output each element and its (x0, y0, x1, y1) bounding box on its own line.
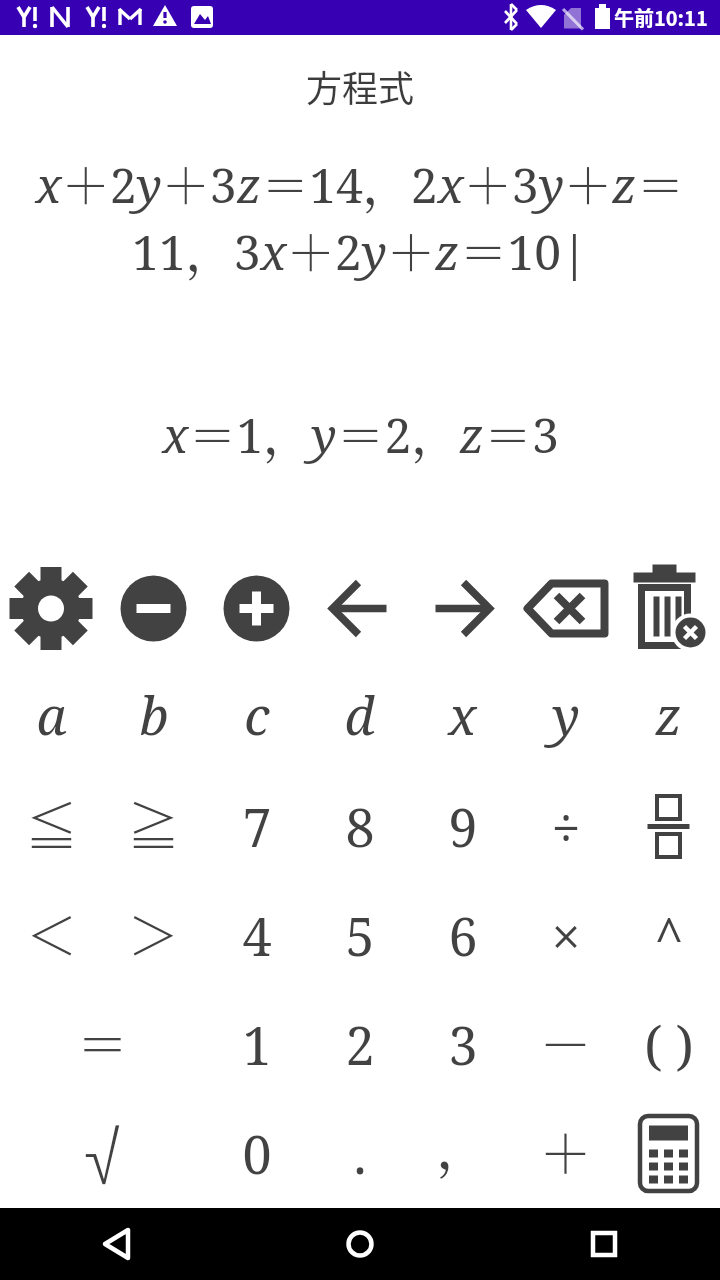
staticText: z (655, 679, 682, 750)
button[interactable] (617, 1099, 720, 1208)
button[interactable] (0, 554, 102, 663)
staticText: a (36, 679, 67, 750)
staticText: × (551, 900, 581, 971)
button[interactable]: 9 (411, 772, 514, 881)
staticText: 8 (345, 791, 375, 862)
button[interactable]: 2 (308, 990, 411, 1099)
staticText: ＜ (25, 895, 78, 970)
staticText: ^ (654, 900, 684, 971)
staticText: x＋2y＋3z＝14，2x＋3y＋z＝ 11，3x＋2y＋z＝10| (0, 148, 720, 284)
staticText: － (539, 1004, 592, 1079)
staticText: x＝1，y＝2，z＝3 (162, 398, 559, 467)
staticText: 0 (242, 1118, 272, 1189)
button[interactable]: 4 (205, 881, 308, 990)
button[interactable] (411, 554, 514, 663)
staticText: 7 (242, 791, 272, 862)
button[interactable]: 6 (411, 881, 514, 990)
staticText: 4 (242, 900, 272, 971)
staticText: ， (436, 1108, 489, 1183)
button[interactable]: 1 (205, 990, 308, 1099)
button[interactable]: x (411, 663, 514, 772)
staticText: b (139, 679, 169, 750)
staticText: 2 (345, 1009, 375, 1080)
staticText: 1 (242, 1009, 272, 1080)
button[interactable]: ÷ (514, 772, 617, 881)
button[interactable]: a (0, 663, 102, 772)
staticText: ＋ (539, 1113, 592, 1188)
button[interactable]: 3 (411, 990, 514, 1099)
button[interactable]: 8 (308, 772, 411, 881)
staticText: ≧ (127, 786, 180, 861)
button[interactable]: ＞ (102, 881, 205, 990)
button[interactable]: ≧ (102, 772, 205, 881)
staticText: . (353, 1118, 367, 1189)
staticText: 午前10:11 (614, 3, 708, 32)
staticText: d (344, 679, 375, 750)
staticText: ÷ (551, 791, 581, 862)
staticText: 6 (448, 900, 478, 971)
button[interactable]: － (514, 990, 617, 1099)
staticText: 5 (345, 900, 375, 971)
staticText: ＞ (127, 895, 180, 970)
staticText: √ (73, 1110, 132, 1193)
button[interactable] (205, 554, 308, 663)
button[interactable]: z (617, 663, 720, 772)
button[interactable]: √ (0, 1099, 205, 1208)
button[interactable]: 7 (205, 772, 308, 881)
staticText: 9 (448, 791, 478, 862)
button[interactable]: c (205, 663, 308, 772)
staticText: 方程式 (306, 60, 415, 112)
button[interactable] (617, 772, 720, 881)
button[interactable]: 5 (308, 881, 411, 990)
button[interactable]: ， (411, 1099, 514, 1208)
staticText: y (552, 679, 580, 750)
button[interactable]: ^ (617, 881, 720, 990)
staticText: ( ) (644, 1009, 694, 1080)
button[interactable]: d (308, 663, 411, 772)
button[interactable] (480, 1208, 720, 1280)
button[interactable] (514, 554, 617, 663)
button[interactable] (308, 554, 411, 663)
button[interactable]: b (102, 663, 205, 772)
button[interactable]: 0 (205, 1099, 308, 1208)
button[interactable]: × (514, 881, 617, 990)
button[interactable]: ( ) (617, 990, 720, 1099)
button[interactable] (0, 1208, 240, 1280)
button[interactable] (240, 1208, 480, 1280)
staticText: x (448, 679, 477, 750)
button[interactable]: ＜ (0, 881, 102, 990)
button[interactable]: ≦ (0, 772, 102, 881)
button[interactable] (102, 554, 205, 663)
button[interactable]: ＋ (514, 1099, 617, 1208)
staticText: ＝ (76, 1004, 129, 1079)
staticText: 3 (448, 1009, 478, 1080)
button[interactable] (617, 554, 720, 663)
staticText: c (244, 679, 270, 750)
button[interactable]: ＝ (0, 990, 205, 1099)
button[interactable]: y (514, 663, 617, 772)
button[interactable]: . (308, 1099, 411, 1208)
staticText: ≦ (25, 786, 78, 861)
